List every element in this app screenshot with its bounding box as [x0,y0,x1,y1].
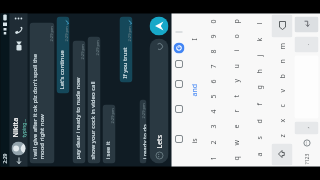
staticText: 2:29 pm [140,102,145,118]
button[interactable]: z [270,128,293,142]
staticText: I [189,37,199,40]
staticText: 2:29 pm [94,39,99,55]
staticText: h [254,68,264,73]
staticText: Nikita [10,117,20,137]
button[interactable]: Google search [173,42,184,53]
staticText: o [231,33,241,38]
button[interactable]: Let's continue [56,16,69,93]
button[interactable]: w [224,134,247,150]
button[interactable]: 4 [201,103,224,118]
button[interactable]: t [224,88,247,103]
button[interactable]: More options [9,13,27,23]
button[interactable]: ?123 [294,153,318,164]
button[interactable]: 6 [201,73,224,88]
staticText: If you trust [120,43,128,78]
staticText: v [277,88,287,92]
button[interactable]: Emoji [302,138,311,147]
staticText: Lets [154,134,164,148]
button[interactable]: h [247,63,270,79]
button[interactable]: 0 [201,13,224,28]
button[interactable]: 2 [201,134,224,150]
button[interactable]: 7 [201,58,224,73]
staticText: a [254,152,264,156]
button[interactable]: 8 [201,43,224,58]
button[interactable]: If you trust [119,16,132,82]
staticText: w [231,139,241,145]
button[interactable]: i [224,43,247,58]
staticText: u [231,63,241,68]
button[interactable]: o [224,28,247,43]
button[interactable]: n [270,53,293,68]
staticText: s [254,135,264,139]
button[interactable]: . [294,36,318,52]
button[interactable]: d [247,112,270,129]
staticText: y [231,78,241,82]
button[interactable]: l [247,15,270,31]
button[interactable]: I [186,13,201,64]
button[interactable]: e [224,118,247,134]
button[interactable]: Voice call [9,23,27,38]
staticText: 9 [208,33,218,38]
button[interactable]: Video call [9,38,27,54]
staticText: i [231,49,241,51]
button[interactable]: x [270,113,293,128]
button[interactable]: b [270,68,293,83]
button[interactable]: pay dear i ready to nude now [72,40,85,163]
button[interactable]: c [270,98,293,113]
button[interactable]: 5 [201,88,224,103]
staticText: t [231,94,241,97]
button[interactable]: Enter [294,16,318,32]
button[interactable]: 9 [201,28,224,43]
staticText: 2:29 pm [48,25,53,41]
staticText: 1 [208,155,218,160]
staticText: 2:29 pm [79,43,84,59]
button[interactable]: GIF [173,78,184,89]
button[interactable]: k [247,31,270,47]
button[interactable]: is [186,115,201,166]
button[interactable]: Shift [271,143,292,165]
button[interactable]: p [224,13,247,28]
button[interactable]: , [294,121,318,134]
button[interactable]: y [224,73,247,88]
button[interactable]: and [186,64,201,115]
button[interactable]: q [224,150,247,166]
button[interactable]: f [247,95,270,112]
button[interactable]: i will give after it ok plz don't spoil … [29,22,54,163]
button[interactable]: Backspace [271,14,292,37]
button[interactable]: 3 [201,118,224,134]
button[interactable]: Lets [149,38,168,163]
button[interactable]: j [247,47,270,63]
staticText: i ready to do [140,120,146,159]
button[interactable]: i see it [102,104,115,163]
staticText: j [254,54,264,56]
button[interactable]: a [247,146,270,163]
staticText: is [189,137,199,143]
staticText: z [277,133,287,137]
staticText: Let's continue [57,43,65,89]
button[interactable]: Clipboard [173,133,184,144]
staticText: e [231,124,241,128]
button[interactable]: m [270,38,293,53]
staticText: 4 [208,108,218,113]
staticText: and [189,83,199,96]
button[interactable]: Stickers [173,103,184,114]
button[interactable]: i ready to do [139,99,146,163]
button[interactable]: show your cock in video call [87,36,100,163]
button[interactable]: Translate [173,58,184,69]
button[interactable]: u [224,58,247,73]
button[interactable]: s [247,129,270,146]
button[interactable]: r [224,103,247,118]
staticText: 8 [208,48,218,53]
staticText: 7 [208,63,218,68]
staticText: m [277,42,287,49]
button[interactable]: Send [149,16,168,35]
staticText: 2:29 [1,153,8,163]
staticText: l [254,22,264,24]
staticText: f [254,102,264,105]
button[interactable]: 1 [201,150,224,166]
button[interactable]: v [270,83,293,98]
button[interactable]: g [247,79,270,95]
staticText: x [277,118,287,122]
button[interactable]: Back [9,155,27,166]
